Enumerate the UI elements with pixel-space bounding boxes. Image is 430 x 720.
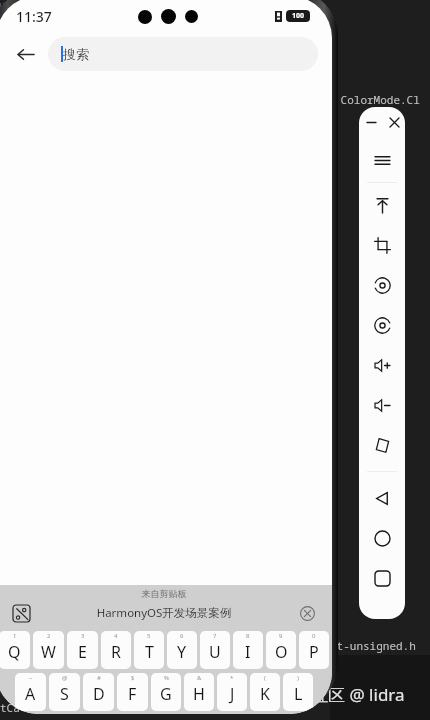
button[interactable]: % xyxy=(151,673,181,711)
staticText: E xyxy=(78,641,87,663)
staticText: I xyxy=(245,641,251,663)
staticText: 8 xyxy=(246,632,250,640)
staticText: 来自剪贴板 xyxy=(0,588,332,599)
button[interactable]: 7 xyxy=(200,631,230,669)
staticText: D xyxy=(93,683,105,705)
button[interactable]: Menu xyxy=(359,140,405,180)
staticText: S xyxy=(60,683,69,705)
staticText: ~ xyxy=(29,674,33,682)
staticText: H xyxy=(193,683,205,705)
button[interactable]: 搜索 xyxy=(48,37,318,71)
staticText: $ xyxy=(131,674,135,682)
staticText: ( xyxy=(264,674,266,682)
staticText: tCa xyxy=(0,700,20,715)
button[interactable]: Volume up xyxy=(359,345,405,385)
staticText: Y xyxy=(177,641,187,663)
staticText: ) xyxy=(297,674,299,682)
staticText: 0 xyxy=(312,632,316,640)
staticText: 9 xyxy=(279,632,283,640)
staticText: U xyxy=(209,641,221,663)
staticText: * xyxy=(230,674,234,682)
button[interactable]: Minimize xyxy=(363,114,379,130)
button[interactable]: 9 xyxy=(266,631,296,669)
staticText: 4 xyxy=(114,632,118,640)
staticText: 5 xyxy=(147,632,151,640)
staticText: Q xyxy=(8,641,21,663)
staticText: lt-unsigned.h xyxy=(330,638,416,653)
button[interactable]: Rotate xyxy=(359,425,405,465)
staticText: J xyxy=(230,683,235,705)
staticText: 11:37 xyxy=(16,7,52,26)
staticText: @ xyxy=(62,674,68,682)
staticText: L xyxy=(294,683,303,705)
button[interactable]: Scroll to top xyxy=(359,185,405,225)
button[interactable]: @ xyxy=(49,673,80,711)
staticText: T xyxy=(145,641,154,663)
button[interactable]: Back xyxy=(8,37,42,71)
staticText: & xyxy=(197,674,202,682)
staticText: HarmonyOS开发场景案例 xyxy=(32,605,296,621)
staticText: 6 xyxy=(180,632,184,640)
staticText: A xyxy=(25,683,36,705)
button[interactable]: Close xyxy=(386,114,402,130)
button[interactable]: * xyxy=(217,673,247,711)
staticText: UT xyxy=(0,0,14,16)
button[interactable]: Screen record xyxy=(359,305,405,345)
button[interactable]: 5 xyxy=(134,631,164,669)
button[interactable]: 6 xyxy=(167,631,197,669)
staticText: 2 xyxy=(47,632,51,640)
staticText: 100 xyxy=(292,11,305,21)
staticText: G xyxy=(160,683,172,705)
button[interactable]: 4 xyxy=(101,631,131,669)
button[interactable]: 1 xyxy=(0,631,30,669)
staticText: 7 xyxy=(213,632,217,640)
staticText: W xyxy=(41,641,56,663)
button[interactable]: Home xyxy=(359,518,405,558)
button[interactable]: & xyxy=(184,673,214,711)
staticText: 搜索 xyxy=(63,46,89,62)
staticText: 掘金技术社区 @ lidra xyxy=(243,683,405,706)
button[interactable]: Clipboard xyxy=(10,602,32,624)
staticText: K xyxy=(260,683,270,705)
staticText: O xyxy=(275,641,288,663)
button[interactable]: 8 xyxy=(233,631,263,669)
button[interactable]: ) xyxy=(283,673,313,711)
button[interactable]: # xyxy=(83,673,114,711)
button[interactable]: Volume down xyxy=(359,385,405,425)
button[interactable]: $ xyxy=(117,673,148,711)
button[interactable]: 2 xyxy=(33,631,64,669)
staticText: F xyxy=(128,683,137,705)
staticText: 3 xyxy=(81,632,85,640)
staticText: R xyxy=(111,641,121,663)
button[interactable]: 0 xyxy=(299,631,329,669)
staticText: % xyxy=(164,674,169,682)
button[interactable]: Recents xyxy=(359,558,405,598)
button[interactable]: ~ xyxy=(15,673,46,711)
button[interactable]: 3 xyxy=(67,631,98,669)
button[interactable]: Back xyxy=(359,478,405,518)
button[interactable]: ( xyxy=(250,673,280,711)
button[interactable]: Screenshot crop xyxy=(359,225,405,265)
staticText: # xyxy=(97,674,101,682)
staticText: .ColorMode.Cl xyxy=(334,92,420,107)
button[interactable]: Dismiss xyxy=(296,602,318,624)
button[interactable]: Record xyxy=(359,265,405,305)
staticText: P xyxy=(309,641,319,663)
staticText: 1 xyxy=(13,632,17,640)
